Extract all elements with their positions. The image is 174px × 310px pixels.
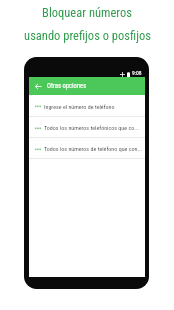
button[interactable]: Back xyxy=(34,82,43,91)
staticText: Ingrese el número de teléfono xyxy=(44,103,115,110)
staticText: Bloquear números xyxy=(42,5,132,20)
staticText: 9:08 xyxy=(132,70,142,77)
staticText: usando prefijos o posfijos xyxy=(24,28,151,43)
button[interactable]: Ingrese el número de teléfono xyxy=(29,95,145,117)
button[interactable]: Todos los números telefónicos que co... xyxy=(29,117,145,138)
button[interactable]: Todos los números de teléfono que con... xyxy=(29,138,145,159)
staticText: Otras opciones xyxy=(47,82,87,90)
staticText: Todos los números de teléfono que con... xyxy=(44,145,143,152)
staticText: Todos los números telefónicos que co... xyxy=(44,124,139,131)
